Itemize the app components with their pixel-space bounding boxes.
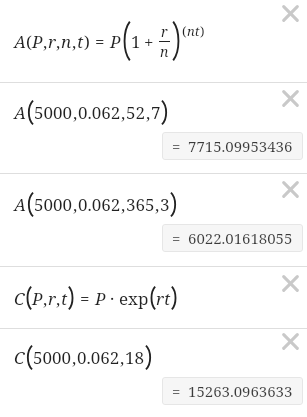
staticText: A <box>14 193 26 216</box>
staticText: r <box>48 287 56 310</box>
staticText: 365 <box>126 193 155 216</box>
staticText: P <box>32 30 43 53</box>
button[interactable]: C <box>0 329 307 417</box>
staticText: 7715.09953436 <box>188 136 293 156</box>
button[interactable]: Delete row <box>275 326 305 356</box>
staticText: , <box>43 287 48 310</box>
staticText: P <box>95 287 106 310</box>
staticText: = <box>80 287 90 310</box>
staticText: P <box>32 287 43 310</box>
staticText: , <box>146 101 151 124</box>
staticText: , <box>43 30 48 53</box>
button[interactable]: Delete row <box>275 0 305 28</box>
button[interactable]: Delete row <box>275 83 305 113</box>
button[interactable]: Delete row <box>275 268 305 298</box>
staticText: 15263.0963633 <box>188 381 293 401</box>
button[interactable]: = <box>162 132 303 160</box>
staticText: t <box>61 287 68 310</box>
staticText: = <box>172 381 181 401</box>
staticText: 5000 <box>34 193 73 216</box>
staticText: , <box>56 287 61 310</box>
staticText: 0.062 <box>78 193 121 216</box>
staticText: t <box>77 30 84 53</box>
staticText: rt <box>156 287 171 310</box>
staticText: , <box>72 346 77 369</box>
staticText: ( <box>26 30 32 53</box>
staticText: 1 <box>131 30 141 53</box>
staticText: exp <box>119 287 149 310</box>
button[interactable]: C <box>0 267 307 328</box>
staticText: , <box>121 193 126 216</box>
staticText: + <box>144 30 154 53</box>
staticText: , <box>73 101 78 124</box>
staticText: = <box>95 30 105 53</box>
staticText: r <box>48 30 56 53</box>
staticText: , <box>155 193 160 216</box>
staticText: 5000 <box>33 346 72 369</box>
staticText: ( <box>182 22 187 40</box>
staticText: ) <box>84 30 90 53</box>
staticText: nt <box>187 22 200 40</box>
staticText: , <box>73 193 78 216</box>
staticText: 0.062 <box>77 346 120 369</box>
staticText: C <box>14 346 25 369</box>
staticText: 0.062 <box>78 101 121 124</box>
button[interactable]: A <box>0 174 307 266</box>
staticText: 18 <box>125 346 145 369</box>
staticText: A <box>14 30 26 53</box>
staticText: 7 <box>151 101 161 124</box>
staticText: 6022.01618055 <box>188 228 293 248</box>
staticText: , <box>56 30 61 53</box>
staticText: A <box>14 101 26 124</box>
staticText: P <box>110 30 121 53</box>
staticText: = <box>172 228 181 248</box>
staticText: , <box>72 30 77 53</box>
staticText: n <box>160 42 169 61</box>
staticText: · <box>110 287 115 310</box>
button[interactable]: = <box>162 377 303 405</box>
button[interactable]: = <box>162 224 303 252</box>
button[interactable]: Delete row <box>275 174 305 204</box>
staticText: r <box>161 22 168 41</box>
button[interactable]: A <box>0 83 307 173</box>
staticText: , <box>120 346 125 369</box>
staticText: = <box>172 136 181 156</box>
staticText: , <box>121 101 126 124</box>
staticText: 3 <box>160 193 170 216</box>
staticText: ) <box>200 22 205 40</box>
button[interactable]: A <box>0 0 307 82</box>
staticText: 52 <box>126 101 146 124</box>
staticText: 5000 <box>34 101 73 124</box>
staticText: C <box>14 287 25 310</box>
staticText: n <box>61 30 72 53</box>
